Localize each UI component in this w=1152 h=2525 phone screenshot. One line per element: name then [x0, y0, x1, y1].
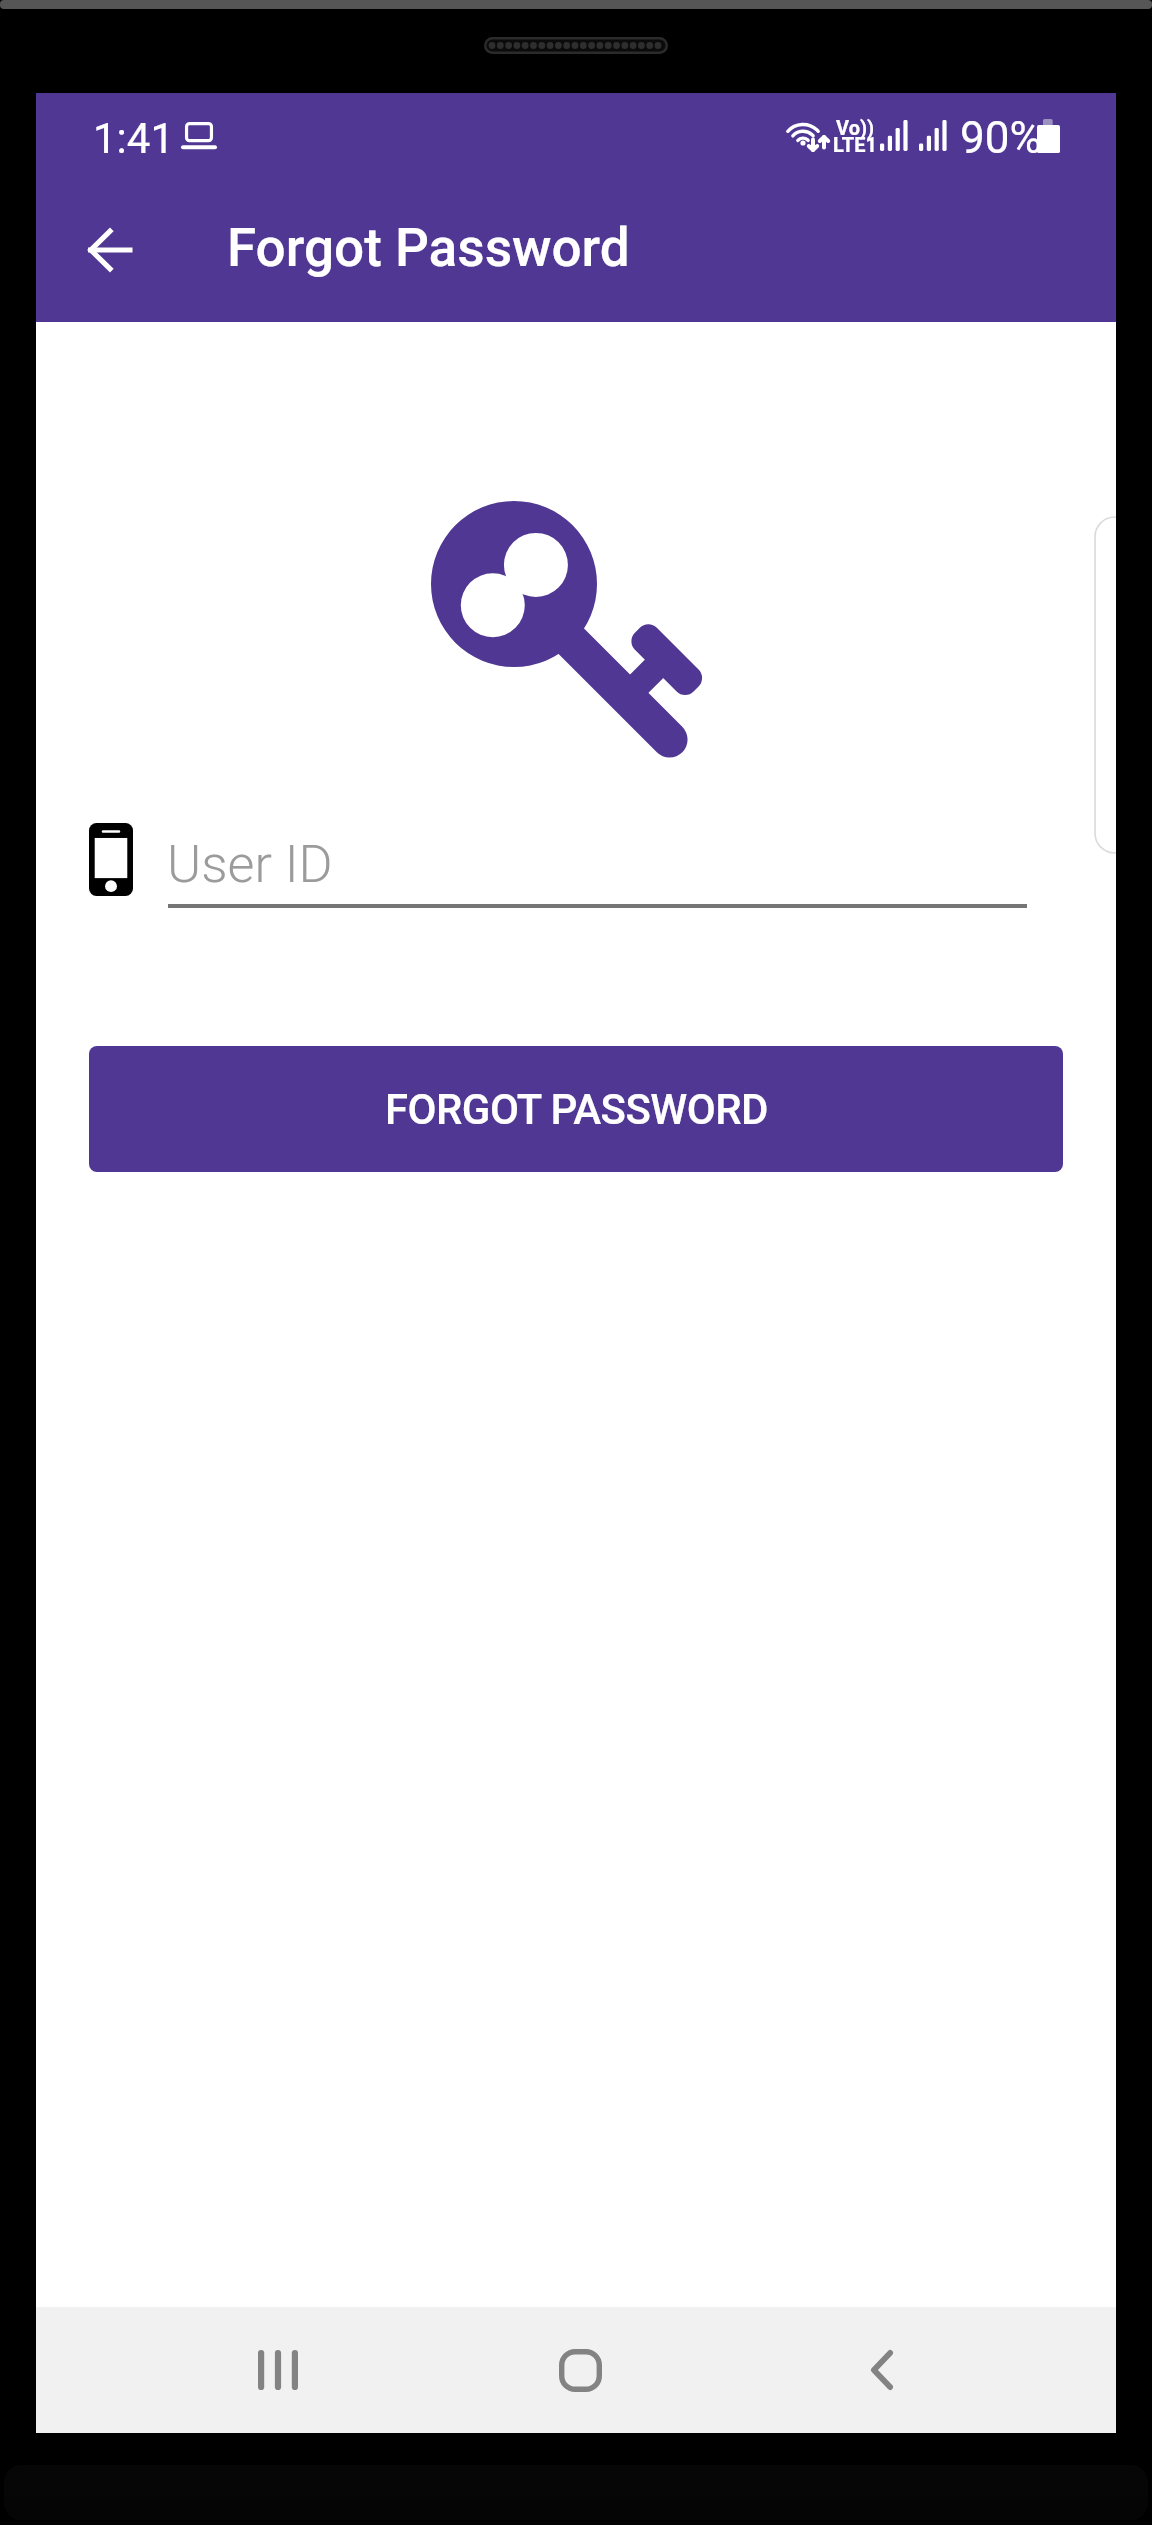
staticText: 90%	[960, 112, 1042, 164]
button[interactable]: Navigate up	[47, 187, 173, 313]
button[interactable]: Home	[517, 2307, 643, 2433]
button[interactable]: Back	[819, 2307, 945, 2433]
staticText: Vo))	[836, 116, 875, 139]
button[interactable]: Recent apps	[215, 2307, 341, 2433]
staticText: LTE1	[833, 133, 877, 156]
staticText: 1:41	[93, 114, 174, 163]
staticText: User ID	[167, 834, 333, 895]
staticText: FORGOT PASSWORD	[385, 1085, 768, 1134]
staticText: Forgot Password	[227, 217, 630, 279]
button[interactable]: FORGOT PASSWORD	[89, 1046, 1063, 1172]
